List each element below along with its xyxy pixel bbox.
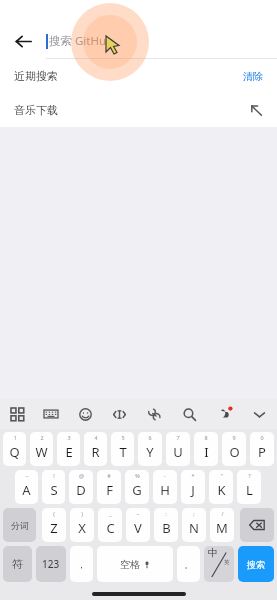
- button[interactable]: Hide keyboard: [242, 399, 277, 429]
- button[interactable]: 6: [138, 432, 162, 466]
- staticText: ;: [193, 510, 195, 517]
- button[interactable]: -: [153, 470, 177, 504]
- staticText: #: [107, 472, 111, 479]
- button[interactable]: 5: [111, 432, 134, 466]
- staticText: G: [132, 481, 142, 499]
- button[interactable]: @: [69, 470, 93, 504]
- button[interactable]: _: [98, 508, 122, 542]
- staticText: 搜索 GitHub: [49, 33, 114, 49]
- staticText: R: [91, 443, 100, 461]
- staticText: 中: [208, 546, 218, 559]
- staticText: D: [76, 481, 86, 499]
- staticText: 。: [184, 559, 193, 570]
- button[interactable]: 0: [250, 432, 274, 466]
- staticText: !: [53, 472, 55, 479]
- button[interactable]: ，: [70, 546, 93, 582]
- staticText: W: [35, 443, 48, 461]
- button[interactable]: 符: [3, 546, 32, 582]
- staticText: ~: [25, 472, 29, 479]
- button[interactable]: 空格: [97, 546, 173, 582]
- button[interactable]: 音乐下载: [14, 93, 263, 127]
- staticText: L: [246, 481, 253, 499]
- button[interactable]: Text edit: [102, 399, 137, 429]
- staticText: 5: [121, 434, 125, 441]
- staticText: 英: [224, 559, 230, 566]
- staticText: M: [216, 519, 228, 537]
- staticText: E: [65, 443, 73, 461]
- staticText: ~: [136, 510, 140, 517]
- staticText: U: [173, 443, 183, 461]
- button[interactable]: 4: [84, 432, 107, 466]
- button[interactable]: 2: [30, 432, 53, 466]
- button[interactable]: 123: [36, 546, 66, 582]
- staticText: S: [50, 481, 58, 499]
- button[interactable]: Handwriting: [207, 399, 242, 429]
- button[interactable]: 3: [57, 432, 80, 466]
- other: Fill query: [250, 104, 263, 117]
- staticText: *: [191, 472, 195, 479]
- staticText: 123: [42, 557, 60, 571]
- staticText: %: [135, 472, 140, 479]
- staticText: 近期搜索: [14, 69, 58, 83]
- button[interactable]: Delete: [240, 508, 274, 542]
- staticText: 7: [176, 434, 180, 441]
- button[interactable]: *: [181, 470, 205, 504]
- button[interactable]: ): [70, 508, 94, 542]
- button[interactable]: ~: [126, 508, 150, 542]
- staticText: I: [204, 443, 209, 461]
- staticText: A: [22, 481, 31, 499]
- staticText: _: [109, 510, 112, 517]
- staticText: 2: [40, 434, 44, 441]
- staticText: V: [134, 519, 142, 537]
- staticText: ): [81, 510, 83, 517]
- button[interactable]: #: [97, 470, 121, 504]
- button[interactable]: Back: [0, 24, 46, 58]
- button[interactable]: 搜索: [238, 546, 274, 582]
- button[interactable]: 。: [177, 546, 200, 582]
- staticText: 音乐下载: [14, 103, 58, 117]
- staticText: 6: [148, 434, 152, 441]
- staticText: 清除: [243, 70, 263, 83]
- button[interactable]: ;: [182, 508, 206, 542]
- staticText: (: [53, 510, 55, 517]
- staticText: 0: [260, 434, 264, 441]
- button[interactable]: 近期搜索: [14, 59, 263, 93]
- button[interactable]: /: [210, 508, 234, 542]
- button[interactable]: Emoji: [68, 399, 102, 429]
- staticText: 空格: [120, 558, 140, 571]
- button[interactable]: 1: [3, 432, 26, 466]
- button[interactable]: !: [42, 470, 65, 504]
- button[interactable]: Keyboard: [34, 399, 68, 429]
- button[interactable]: 搜索 GitHub: [46, 24, 267, 58]
- staticText: ，: [77, 559, 86, 570]
- button[interactable]: 分词: [3, 508, 36, 542]
- staticText: Q: [9, 443, 20, 461]
- staticText: 3: [67, 434, 71, 441]
- button[interactable]: (: [42, 508, 66, 542]
- staticText: C: [106, 519, 115, 537]
- staticText: @: [79, 472, 84, 479]
- button[interactable]: ?: [237, 470, 261, 504]
- button[interactable]: 7: [166, 432, 190, 466]
- staticText: P: [258, 443, 266, 461]
- button[interactable]: 8: [194, 432, 218, 466]
- button[interactable]: Chinese English toggle: [204, 546, 234, 582]
- button[interactable]: :: [154, 508, 178, 542]
- button[interactable]: 9: [222, 432, 246, 466]
- staticText: :: [165, 510, 167, 517]
- button[interactable]: Clipboard: [137, 399, 172, 429]
- staticText: J: [191, 481, 195, 499]
- staticText: O: [229, 443, 240, 461]
- staticText: 搜索: [247, 559, 265, 570]
- staticText: 4: [94, 434, 98, 441]
- staticText: Z: [50, 519, 58, 537]
- staticText: N: [189, 519, 199, 537]
- button[interactable]: ~: [15, 470, 38, 504]
- button[interactable]: Search: [172, 399, 207, 429]
- staticText: 9: [232, 434, 236, 441]
- staticText: X: [78, 519, 86, 537]
- button[interactable]: ": [209, 470, 233, 504]
- button[interactable]: Apps: [0, 399, 34, 429]
- button[interactable]: %: [125, 470, 149, 504]
- staticText: ?: [248, 472, 251, 479]
